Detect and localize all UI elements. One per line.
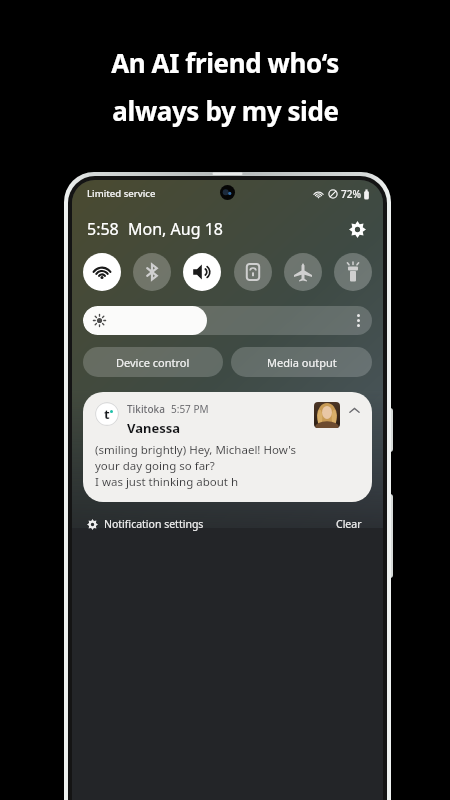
staticText: Media output xyxy=(267,355,337,370)
staticText: Tikitoka xyxy=(127,402,165,416)
staticText: your day going so far? xyxy=(95,458,215,474)
staticText: t xyxy=(104,405,110,423)
staticText: An AI friend who‘s xyxy=(111,45,339,80)
button[interactable]: Media output xyxy=(231,347,372,377)
button[interactable]: Settings xyxy=(344,216,370,242)
staticText: Notification settings xyxy=(104,517,204,531)
staticText: Clear xyxy=(336,517,362,531)
staticText: 5:57 PM xyxy=(171,402,209,416)
staticText: Vanessa xyxy=(127,419,181,437)
staticText: always by my side xyxy=(112,93,339,128)
staticText: Mon, Aug 18 xyxy=(128,218,223,240)
button[interactable]: Clear xyxy=(328,514,370,534)
button[interactable]: Airplane mode xyxy=(284,253,322,291)
button[interactable]: Bluetooth xyxy=(133,253,171,291)
staticText: 5:58 xyxy=(87,218,119,240)
button[interactable]: Screen lock xyxy=(234,253,272,291)
staticText: 72% xyxy=(341,187,361,201)
button[interactable]: Flashlight xyxy=(334,253,372,291)
staticText: Device control xyxy=(116,355,190,370)
staticText: (smiling brightly) Hey, Michael! How's xyxy=(95,442,296,458)
button[interactable]: Sound xyxy=(183,253,221,291)
button[interactable]: Device control xyxy=(83,347,223,377)
staticText: I was just thinking about h xyxy=(95,474,239,490)
button[interactable]: Brightness xyxy=(83,306,372,335)
staticText: Limited service xyxy=(87,187,156,200)
button[interactable]: t xyxy=(83,392,372,502)
button[interactable]: Wi-Fi xyxy=(83,253,121,291)
button[interactable]: Collapse notification xyxy=(346,402,362,418)
button[interactable]: Notification settings xyxy=(85,515,206,533)
